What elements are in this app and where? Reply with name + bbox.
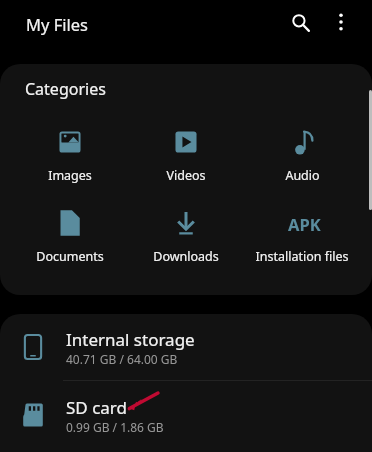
button[interactable]: Documents bbox=[12, 209, 128, 265]
button[interactable]: Search bbox=[280, 2, 320, 42]
button[interactable]: SD card bbox=[0, 381, 372, 449]
staticText: 0.99 GB / 1.86 GB bbox=[66, 419, 164, 435]
staticText: Documents bbox=[36, 248, 104, 265]
staticText: My Files bbox=[26, 13, 88, 35]
button[interactable]: More options bbox=[321, 2, 361, 42]
staticText: Internal storage bbox=[66, 328, 195, 351]
staticText: Downloads bbox=[153, 248, 219, 265]
staticText: Images bbox=[48, 167, 92, 184]
button[interactable]: Videos bbox=[128, 128, 244, 184]
staticText: 40.71 GB / 64.00 GB bbox=[66, 351, 178, 367]
staticText: APK bbox=[288, 213, 321, 235]
staticText: Installation files bbox=[255, 248, 349, 265]
staticText: Categories bbox=[25, 78, 106, 100]
staticText: Audio bbox=[285, 167, 320, 184]
button[interactable]: Images bbox=[12, 128, 128, 184]
button[interactable]: Audio bbox=[244, 128, 360, 184]
button[interactable]: APK bbox=[244, 209, 360, 265]
staticText: SD card bbox=[66, 396, 127, 419]
button[interactable]: Downloads bbox=[128, 209, 244, 265]
staticText: Videos bbox=[166, 167, 206, 184]
button[interactable]: Internal storage bbox=[0, 314, 372, 380]
